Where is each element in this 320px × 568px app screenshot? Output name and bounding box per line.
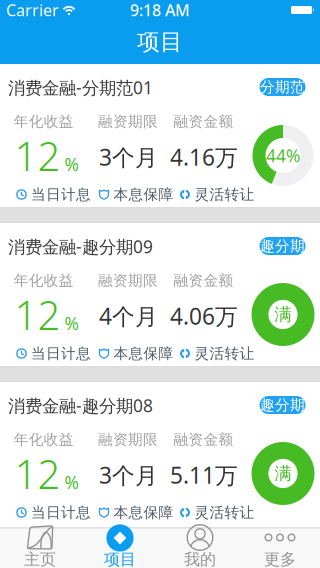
- staticText: 3个月: [99, 460, 158, 490]
- staticText: 本息保障: [113, 344, 173, 362]
- button[interactable]: 消费金融-趣分期09: [0, 223, 320, 366]
- staticText: 消费金融-趣分期08: [8, 394, 153, 417]
- button[interactable]: 趣分期: [259, 396, 305, 414]
- staticText: 融资金额: [173, 430, 233, 448]
- staticText: 本息保障: [113, 185, 173, 203]
- staticText: 当日计息: [31, 503, 91, 521]
- staticText: 主页: [24, 550, 56, 568]
- staticText: 融资金额: [173, 271, 233, 289]
- staticText: 44%: [266, 144, 300, 167]
- staticText: 12: [14, 288, 60, 341]
- staticText: 灵活转让: [194, 503, 254, 521]
- staticText: 年化收益: [14, 430, 74, 448]
- staticText: 趣分期: [260, 396, 305, 414]
- staticText: 当日计息: [31, 185, 91, 203]
- staticText: 9:18 AM: [130, 0, 190, 21]
- button[interactable]: 消费金融-分期范01: [0, 64, 320, 207]
- staticText: 4.16万: [170, 142, 238, 172]
- staticText: 融资期限: [98, 112, 158, 130]
- button[interactable]: 消费金融-趣分期08: [0, 382, 320, 527]
- staticText: 4个月: [99, 301, 158, 331]
- staticText: %: [64, 471, 78, 494]
- staticText: %: [64, 312, 78, 335]
- staticText: 项目: [137, 28, 183, 56]
- staticText: 年化收益: [14, 112, 74, 130]
- staticText: 3个月: [99, 142, 158, 172]
- button[interactable]: 趣分期: [259, 237, 305, 255]
- staticText: Carrier: [6, 0, 59, 21]
- staticText: 融资金额: [173, 112, 233, 130]
- button[interactable]: 分期范: [259, 78, 305, 96]
- staticText: 分期范: [260, 78, 305, 96]
- staticText: 当日计息: [31, 344, 91, 362]
- button[interactable]: 项目: [80, 527, 160, 568]
- staticText: 满: [274, 463, 291, 484]
- staticText: 消费金融-分期范01: [8, 76, 153, 99]
- staticText: 灵活转让: [194, 344, 254, 362]
- staticText: 更多: [264, 550, 296, 568]
- staticText: 趣分期: [260, 237, 305, 255]
- staticText: 我的: [184, 550, 216, 568]
- button[interactable]: 我的: [160, 527, 240, 568]
- staticText: 4.06万: [170, 301, 238, 331]
- staticText: 年化收益: [14, 271, 74, 289]
- staticText: 5.11万: [170, 460, 238, 490]
- staticText: 12: [14, 129, 60, 182]
- staticText: 融资期限: [98, 271, 158, 289]
- button[interactable]: 更多: [240, 527, 320, 568]
- staticText: 融资期限: [98, 430, 158, 448]
- staticText: 灵活转让: [194, 185, 254, 203]
- button[interactable]: 主页: [0, 527, 80, 568]
- staticText: 本息保障: [113, 503, 173, 521]
- staticText: %: [64, 153, 78, 176]
- staticText: 消费金融-趣分期09: [8, 235, 153, 258]
- staticText: 满: [274, 304, 291, 325]
- staticText: 12: [14, 447, 60, 500]
- staticText: 项目: [104, 550, 136, 568]
